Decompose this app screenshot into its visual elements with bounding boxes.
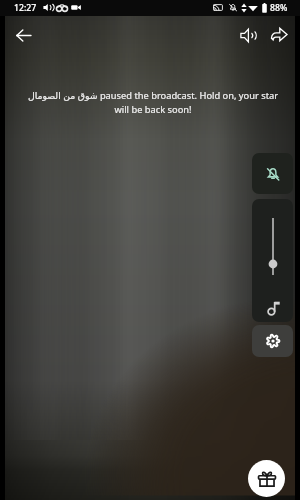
button[interactable]: Back (10, 22, 36, 48)
button[interactable]: Volume (234, 22, 260, 48)
button[interactable]: Share (266, 22, 292, 48)
staticText: شوق من الصومال paused the broadcast. Hol… (22, 89, 284, 116)
button[interactable]: Settings (252, 325, 293, 357)
button[interactable]: Send gift (248, 460, 285, 497)
button[interactable]: Volume level (260, 199, 286, 293)
staticText: 88% (270, 2, 288, 14)
button[interactable]: Unmute notifications (252, 153, 293, 194)
staticText: 12:27 (14, 2, 37, 14)
button[interactable]: Music (252, 293, 293, 322)
